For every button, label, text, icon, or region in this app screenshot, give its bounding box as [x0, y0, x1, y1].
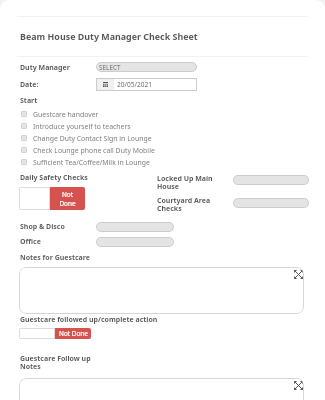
staticText: Daily Safety Checks: [20, 173, 88, 183]
staticText: Shop & Disco: [20, 222, 65, 232]
button[interactable]: SELECT: [96, 62, 197, 72]
button[interactable]: Select option: [233, 175, 309, 185]
staticText: Introduce yourself to teachers: [33, 122, 131, 131]
staticText: Not Done: [59, 329, 88, 338]
staticText: Guestcare followed up/complete action: [20, 315, 158, 325]
staticText: SELECT: [99, 63, 121, 72]
button[interactable]: Guestcare handover: [18, 108, 99, 120]
staticText: Courtyard Area Checks: [157, 196, 211, 213]
staticText: Beam House Duty Manager Check Sheet: [20, 30, 198, 42]
staticText: Check Lounge phone call Duty Mobile: [33, 146, 155, 155]
staticText: Guestcare handover: [33, 110, 99, 119]
staticText: Duty Manager: [20, 63, 70, 73]
button[interactable]: Not Done: [19, 187, 85, 210]
staticText: Start: [20, 96, 38, 106]
staticText: Locked Up Main House: [157, 174, 213, 191]
button[interactable]: Select option: [233, 198, 309, 208]
staticText: Change Duty Contact Sign in Lounge: [33, 134, 152, 143]
staticText: Not Done: [59, 190, 76, 208]
button[interactable]: Select option: [96, 237, 174, 247]
button[interactable]: Pick date: [96, 78, 197, 91]
staticText: 20/05/2021: [117, 80, 153, 89]
other: Pick date: [96, 78, 114, 91]
button[interactable]: Select option: [96, 222, 174, 232]
button[interactable]: Sufficient Tea/Coffee/Milk in Lounge: [18, 156, 150, 168]
button[interactable]: Change Duty Contact Sign in Lounge: [18, 132, 152, 144]
button[interactable]: Notes: [19, 378, 304, 400]
button[interactable]: Introduce yourself to teachers: [18, 120, 131, 132]
staticText: Sufficient Tea/Coffee/Milk in Lounge: [33, 158, 150, 167]
staticText: Date:: [20, 80, 39, 90]
button[interactable]: Notes: [19, 267, 304, 314]
staticText: Office: [20, 237, 41, 247]
staticText: Notes for Guestcare: [20, 253, 90, 263]
staticText: Guestcare Follow up Notes: [20, 354, 91, 371]
button[interactable]: Check Lounge phone call Duty Mobile: [18, 144, 155, 156]
button[interactable]: Not Done: [19, 328, 91, 339]
